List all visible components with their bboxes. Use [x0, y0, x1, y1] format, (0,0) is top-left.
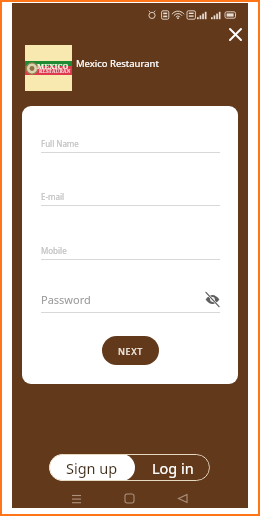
- button[interactable]: Recents: [63, 488, 89, 508]
- button[interactable]: Home: [116, 488, 142, 508]
- staticText: NEXT: [118, 345, 143, 357]
- staticText: Log in: [152, 458, 194, 478]
- staticText: Mexico Restaurant: [76, 57, 159, 70]
- staticText: E-mail: [41, 191, 65, 202]
- staticText: MEXICO: [37, 61, 69, 71]
- button[interactable]: E-mail: [41, 191, 220, 206]
- button[interactable]: Mobile: [41, 245, 220, 260]
- staticText: Sign up: [66, 458, 118, 478]
- button[interactable]: Password: [41, 292, 220, 313]
- button[interactable]: Back: [169, 488, 195, 508]
- staticText: Full Name: [41, 138, 79, 149]
- button[interactable]: Sign up: [49, 454, 135, 481]
- staticText: Password: [41, 292, 91, 307]
- button[interactable]: Close: [223, 22, 247, 46]
- staticText: Mobile: [41, 245, 67, 256]
- button[interactable]: NEXT: [102, 336, 159, 365]
- staticText: RESTAURANT: [39, 68, 72, 74]
- button[interactable]: Full Name: [41, 138, 220, 153]
- button[interactable]: Log in: [135, 454, 210, 481]
